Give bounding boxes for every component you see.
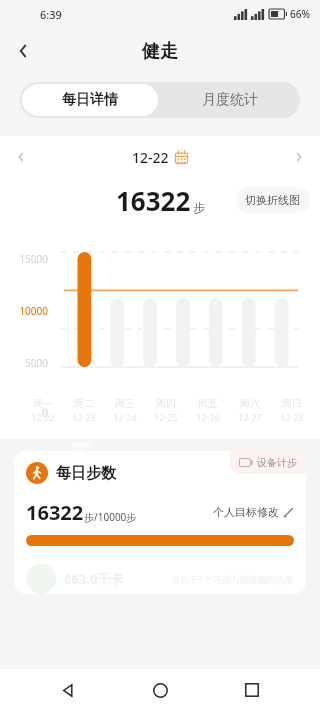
- staticText: 周日: [282, 397, 302, 410]
- button[interactable]: 设备计步: [230, 451, 306, 474]
- staticText: 12-22: [31, 411, 55, 423]
- staticText: 10000: [4, 304, 48, 318]
- staticText: 16322: [116, 183, 191, 218]
- staticText: 12-28: [280, 411, 304, 423]
- staticText: 66%: [290, 7, 310, 21]
- staticText: 步: [193, 200, 205, 215]
- staticText: 相当于2个巧克力甜甜圈的热量: [171, 573, 294, 585]
- button[interactable]: 月度统计: [160, 82, 300, 118]
- staticText: 月度统计: [202, 91, 258, 109]
- staticText: 周二: [74, 397, 94, 410]
- staticText: 健走: [142, 40, 178, 63]
- staticText: 5000: [4, 356, 48, 370]
- button[interactable]: Next day: [278, 136, 320, 178]
- button[interactable]: Back: [44, 669, 92, 711]
- button[interactable]: 切换折线图: [235, 187, 310, 213]
- staticText: 0: [4, 406, 48, 420]
- staticText: 663.0千卡: [64, 570, 124, 588]
- staticText: 12-27: [238, 411, 262, 423]
- button[interactable]: 每日详情: [22, 84, 158, 116]
- staticText: 周五: [198, 397, 218, 410]
- staticText: 周六: [240, 397, 260, 410]
- button[interactable]: 12-22: [132, 148, 188, 167]
- staticText: 周四: [156, 397, 176, 410]
- staticText: 12-23: [72, 411, 96, 423]
- staticText: 6:39: [40, 7, 62, 22]
- staticText: 12-22: [132, 148, 169, 167]
- staticText: 步/10000步: [84, 510, 137, 524]
- button[interactable]: Recent apps: [228, 669, 276, 711]
- button[interactable]: 个人目标修改: [213, 505, 294, 519]
- button[interactable]: Previous day: [0, 136, 42, 178]
- staticText: 切换折线图: [245, 193, 300, 207]
- staticText: 15000: [4, 252, 48, 266]
- staticText: 每日详情: [62, 91, 118, 109]
- button[interactable]: 每日步数: [14, 451, 306, 594]
- staticText: 周一: [33, 397, 53, 410]
- button[interactable]: Back: [0, 28, 46, 74]
- staticText: 个人目标修改: [213, 505, 279, 519]
- staticText: 12-26: [196, 411, 220, 423]
- staticText: 设备计步: [257, 456, 297, 469]
- staticText: 每日步数: [56, 464, 116, 483]
- button[interactable]: Home: [136, 669, 184, 711]
- staticText: 12-25: [154, 411, 178, 423]
- staticText: 周三: [115, 397, 135, 410]
- staticText: 12-24: [113, 411, 137, 423]
- staticText: 16322: [26, 499, 84, 526]
